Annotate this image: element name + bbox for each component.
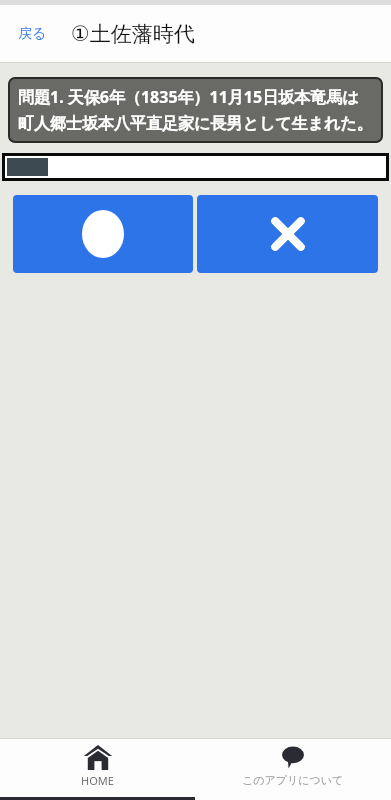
button[interactable]: HOME	[0, 738, 195, 800]
button[interactable]: ○ 正しい	[13, 195, 193, 273]
staticText: このアプリについて	[242, 773, 344, 787]
button[interactable]: このアプリについて	[195, 738, 391, 800]
button[interactable]: 戻る	[14, 19, 51, 49]
button[interactable]: × 誤り	[197, 195, 378, 273]
staticText: 問題1. 天保6年（1835年）11月15日坂本竜馬は町人郷士坂本八平直足家に長…	[18, 86, 373, 134]
staticText: ①土佐藩時代	[71, 21, 195, 47]
staticText: HOME	[81, 773, 114, 788]
staticText: 戻る	[18, 25, 47, 43]
